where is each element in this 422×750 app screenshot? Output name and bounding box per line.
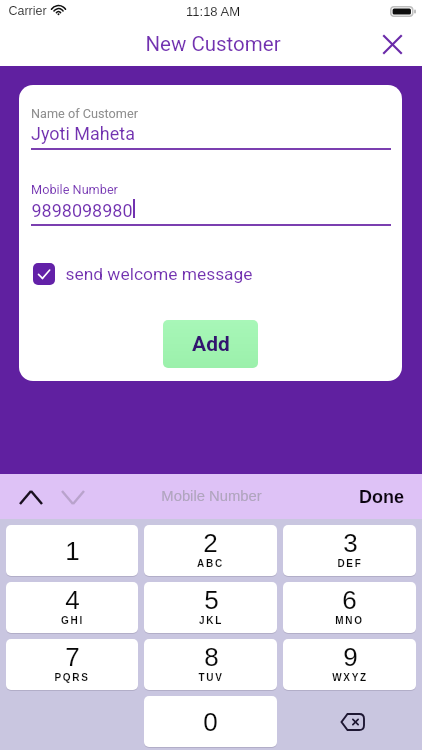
button[interactable]: 5 — [144, 582, 277, 633]
staticText: Jyoti Maheta — [31, 123, 135, 144]
button[interactable]: Delete — [283, 696, 416, 747]
staticText: Carrier — [8, 4, 47, 18]
staticText: 1 — [65, 536, 80, 565]
button[interactable]: Done — [359, 487, 404, 507]
staticText: PQRS — [54, 672, 90, 683]
button[interactable]: send welcome message — [33, 263, 259, 285]
staticText: Mobile Number — [161, 488, 262, 505]
staticText: 2 — [203, 528, 218, 557]
staticText: WXYZ — [332, 672, 368, 683]
staticText: Done — [359, 487, 404, 507]
button[interactable]: 1 — [6, 525, 138, 576]
staticText: TUV — [198, 672, 224, 683]
button[interactable]: Next field — [56, 480, 90, 514]
button[interactable]: Close — [373, 25, 411, 63]
staticText: Name of Customer — [31, 106, 138, 121]
button[interactable]: 4 — [6, 582, 138, 633]
staticText: Add — [192, 332, 230, 357]
button[interactable]: Add — [163, 320, 258, 368]
staticText: DEF — [337, 558, 363, 569]
staticText: MNO — [335, 615, 364, 626]
staticText: 9898098980 — [31, 200, 133, 221]
button[interactable]: 7 — [6, 639, 138, 690]
staticText: 3 — [343, 528, 358, 557]
staticText: Mobile Number — [31, 182, 118, 197]
staticText: 6 — [342, 585, 357, 614]
staticText: 4 — [65, 585, 80, 614]
staticText: New Customer — [145, 32, 281, 56]
button[interactable]: 9 — [283, 639, 416, 690]
staticText: 7 — [65, 642, 80, 671]
staticText: 5 — [204, 585, 219, 614]
staticText: 11:18 AM — [186, 4, 240, 19]
button[interactable]: 8 — [144, 639, 277, 690]
button[interactable]: Previous field — [14, 480, 48, 514]
staticText: send welcome message — [65, 264, 253, 284]
button[interactable]: 2 — [144, 525, 277, 576]
button[interactable]: 6 — [283, 582, 416, 633]
staticText: ABC — [197, 558, 224, 569]
staticText: GHI — [61, 615, 84, 626]
button[interactable]: 0 — [144, 696, 277, 747]
staticText: JKL — [199, 615, 223, 626]
staticText: 0 — [203, 707, 218, 736]
staticText: 9 — [343, 642, 358, 671]
staticText: 8 — [204, 642, 219, 671]
button[interactable]: 3 — [283, 525, 416, 576]
